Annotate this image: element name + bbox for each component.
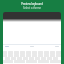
button[interactable]: Suggestion	[5, 46, 9, 47]
staticText: Preview keyboard	[0, 2, 64, 6]
staticText: Select a theme	[0, 6, 64, 10]
